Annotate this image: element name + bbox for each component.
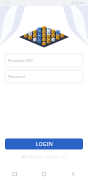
staticText: Mauritius NID (8, 58, 33, 63)
staticText: LOGIN (35, 140, 52, 147)
staticText: 9:41 (3, 0, 10, 6)
button[interactable]: Home (29, 168, 59, 180)
button[interactable]: LOGIN (5, 138, 83, 149)
button[interactable]: Recent apps (0, 168, 29, 180)
button[interactable]: Back (59, 168, 88, 180)
staticText: MNIC Authority • Version 1.0.4 (21, 155, 67, 159)
staticText: Password (8, 74, 25, 79)
